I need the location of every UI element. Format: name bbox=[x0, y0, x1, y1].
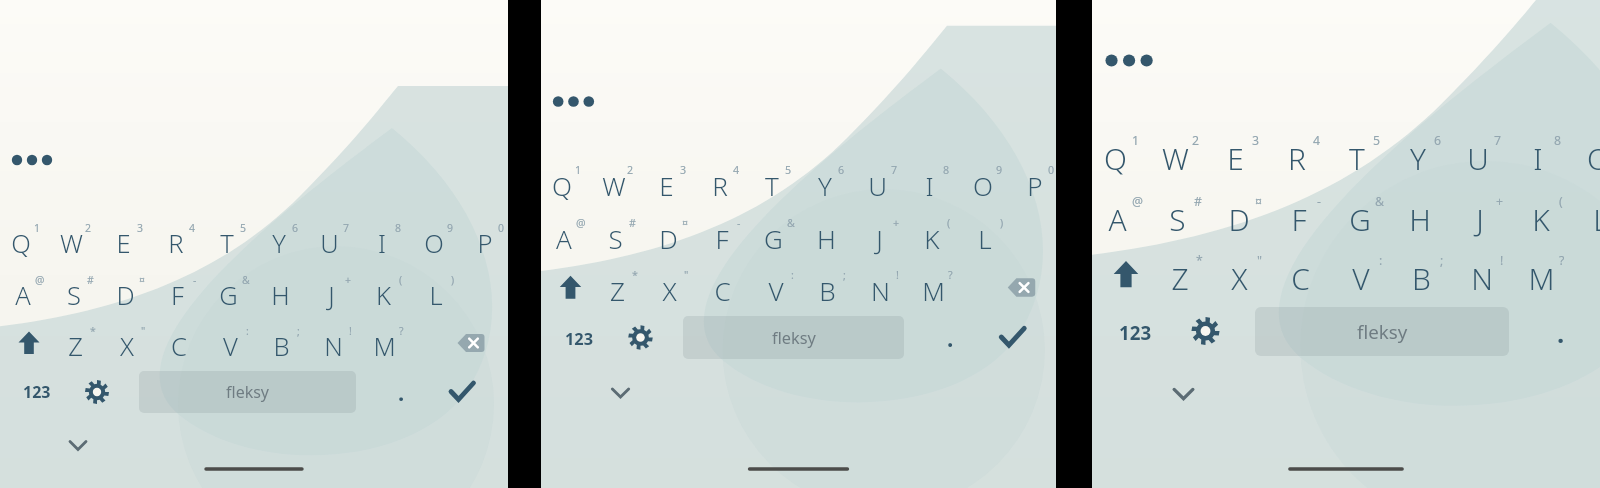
button[interactable]: P bbox=[464, 217, 513, 263]
button[interactable]: D bbox=[105, 269, 154, 315]
button[interactable]: Y bbox=[258, 217, 307, 263]
button[interactable]: M bbox=[364, 320, 413, 366]
button[interactable]: F bbox=[1275, 188, 1332, 242]
button[interactable]: Z bbox=[1156, 247, 1213, 301]
button[interactable]: N bbox=[1458, 247, 1515, 301]
button[interactable]: E bbox=[646, 159, 695, 206]
button[interactable]: U bbox=[1454, 127, 1511, 181]
button[interactable]: Settings bbox=[76, 373, 118, 411]
button[interactable]: Settings bbox=[619, 318, 662, 357]
button[interactable]: R bbox=[155, 217, 204, 263]
button[interactable]: Q bbox=[1092, 127, 1149, 181]
button[interactable]: H bbox=[260, 269, 309, 315]
button[interactable]: A bbox=[543, 212, 592, 259]
button[interactable]: Backspace bbox=[446, 323, 496, 363]
button[interactable]: X bbox=[106, 320, 155, 366]
button[interactable]: Hide keyboard bbox=[58, 430, 98, 460]
button[interactable]: R bbox=[1273, 127, 1330, 181]
button[interactable]: More options bbox=[1101, 44, 1164, 77]
button[interactable]: R bbox=[699, 159, 748, 206]
button[interactable]: K bbox=[363, 269, 412, 315]
button[interactable]: H bbox=[1396, 188, 1453, 242]
button[interactable]: X bbox=[649, 264, 698, 311]
button[interactable]: G bbox=[753, 212, 802, 259]
button[interactable]: C bbox=[158, 320, 207, 366]
button[interactable]: J bbox=[311, 269, 360, 315]
button[interactable]: N bbox=[860, 264, 909, 311]
button[interactable]: W bbox=[1152, 127, 1209, 181]
button[interactable]: J bbox=[859, 212, 908, 259]
button[interactable]: E bbox=[103, 217, 152, 263]
button[interactable]: G bbox=[208, 269, 257, 315]
button[interactable]: 123 bbox=[549, 321, 608, 356]
button[interactable]: I bbox=[909, 159, 958, 206]
button[interactable]: G bbox=[1336, 188, 1393, 242]
button[interactable]: L bbox=[1577, 188, 1600, 242]
button[interactable]: 123 bbox=[1101, 312, 1169, 352]
button[interactable]: V bbox=[210, 320, 259, 366]
button[interactable]: Hide keyboard bbox=[600, 377, 641, 408]
button[interactable]: W bbox=[593, 159, 642, 206]
button[interactable]: J bbox=[1456, 188, 1513, 242]
button[interactable]: D bbox=[648, 212, 697, 259]
button[interactable]: F bbox=[157, 269, 206, 315]
button[interactable]: Shift bbox=[6, 321, 52, 365]
button[interactable]: O bbox=[1575, 127, 1600, 181]
button[interactable]: U bbox=[857, 159, 906, 206]
button[interactable]: P bbox=[1014, 159, 1063, 206]
button[interactable]: K bbox=[911, 212, 960, 259]
button[interactable]: X bbox=[1216, 247, 1273, 301]
button[interactable]: F bbox=[701, 212, 750, 259]
button[interactable]: I bbox=[361, 217, 410, 263]
button[interactable]: . bbox=[931, 321, 970, 356]
button[interactable]: fleksy bbox=[1255, 307, 1509, 356]
button[interactable]: S bbox=[1154, 188, 1211, 242]
button[interactable]: T bbox=[1333, 127, 1390, 181]
button[interactable]: B bbox=[261, 320, 310, 366]
button[interactable]: T bbox=[751, 159, 800, 206]
button[interactable]: Settings bbox=[1181, 309, 1230, 353]
button[interactable]: B bbox=[1398, 247, 1455, 301]
button[interactable]: Hide keyboard bbox=[1160, 376, 1207, 411]
button[interactable]: K bbox=[1517, 188, 1574, 242]
button[interactable]: C bbox=[702, 264, 751, 311]
button[interactable]: I bbox=[1514, 127, 1571, 181]
button[interactable]: fleksy bbox=[139, 371, 356, 413]
button[interactable]: M bbox=[1518, 247, 1575, 301]
button[interactable]: O bbox=[962, 159, 1011, 206]
button[interactable]: C bbox=[1277, 247, 1334, 301]
button[interactable]: V bbox=[1337, 247, 1394, 301]
button[interactable]: Z bbox=[597, 264, 646, 311]
button[interactable]: O bbox=[413, 217, 462, 263]
button[interactable]: More options bbox=[549, 87, 604, 116]
button[interactable]: Backspace bbox=[996, 267, 1047, 308]
button[interactable]: Z bbox=[55, 320, 104, 366]
button[interactable]: B bbox=[807, 264, 856, 311]
button[interactable]: Q bbox=[0, 217, 49, 263]
button[interactable]: Shift bbox=[547, 265, 594, 310]
button[interactable]: S bbox=[595, 212, 644, 259]
button[interactable]: More options bbox=[8, 146, 62, 174]
button[interactable]: Done bbox=[988, 318, 1037, 357]
button[interactable]: U bbox=[309, 217, 358, 263]
button[interactable]: Done bbox=[438, 373, 486, 411]
button[interactable]: L bbox=[964, 212, 1013, 259]
button[interactable]: . bbox=[382, 375, 420, 409]
button[interactable]: M bbox=[913, 264, 962, 311]
button[interactable]: Shift bbox=[1099, 249, 1153, 300]
button[interactable]: L bbox=[415, 269, 464, 315]
button[interactable]: 123 bbox=[8, 375, 66, 409]
button[interactable]: V bbox=[755, 264, 804, 311]
button[interactable]: A bbox=[1094, 188, 1151, 242]
button[interactable]: . bbox=[1539, 312, 1583, 352]
button[interactable]: S bbox=[53, 269, 102, 315]
button[interactable]: A bbox=[2, 269, 51, 315]
button[interactable]: Y bbox=[1394, 127, 1451, 181]
button[interactable]: W bbox=[51, 217, 100, 263]
button[interactable]: H bbox=[806, 212, 855, 259]
button[interactable]: Y bbox=[804, 159, 853, 206]
button[interactable]: T bbox=[206, 217, 255, 263]
button[interactable]: Q bbox=[541, 159, 590, 206]
button[interactable]: fleksy bbox=[683, 316, 904, 359]
button[interactable]: D bbox=[1215, 188, 1272, 242]
